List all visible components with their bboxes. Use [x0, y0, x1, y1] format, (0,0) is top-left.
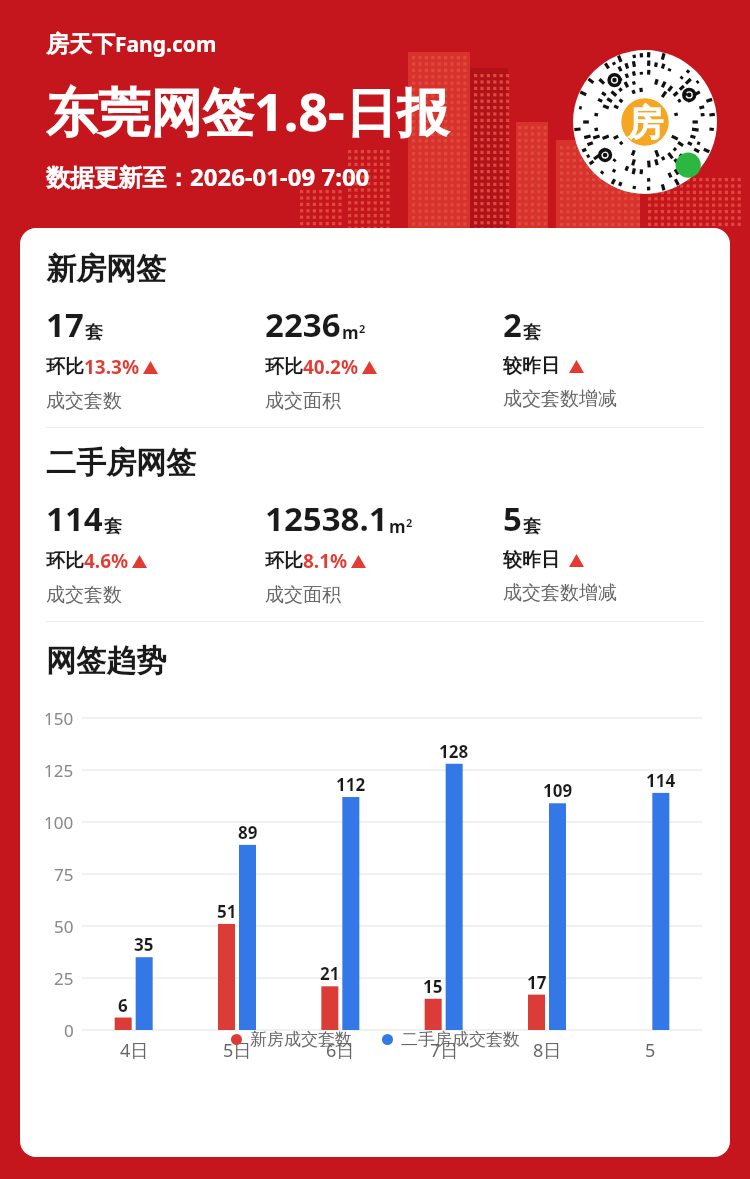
staticText: 7日	[430, 1038, 459, 1063]
button[interactable]: 5	[503, 496, 730, 605]
staticText: 成交套数	[46, 583, 122, 607]
button[interactable]: 114	[46, 496, 265, 607]
staticText: 75	[54, 863, 74, 886]
button[interactable]: 新房成交套数	[231, 1029, 352, 1050]
staticText: 4日	[120, 1038, 149, 1063]
staticText: 成交套数增减	[503, 581, 617, 605]
staticText: 6	[118, 994, 128, 1017]
staticText: 100	[44, 811, 74, 834]
staticText: 5日	[223, 1038, 252, 1063]
button[interactable]: 2	[503, 302, 730, 411]
staticText: 6日	[326, 1038, 355, 1063]
staticText: 环比	[46, 549, 84, 573]
staticText: 109	[543, 779, 573, 802]
staticText: 50	[54, 915, 74, 938]
staticText: m	[342, 321, 359, 344]
staticText: 4.6%	[84, 548, 129, 574]
button[interactable]: 12538.1	[265, 496, 503, 607]
staticText: Fang.com	[115, 30, 217, 59]
button[interactable]: 17	[46, 302, 265, 413]
staticText: 35	[134, 933, 154, 956]
staticText: m	[389, 515, 406, 538]
staticText: 2	[406, 515, 413, 530]
staticText: 17	[46, 302, 84, 347]
staticText: 新房成交套数	[250, 1029, 352, 1050]
staticText: 东莞网签1.8-日报	[46, 75, 449, 146]
button[interactable]: QR code	[573, 50, 717, 194]
staticText: 较昨日	[503, 354, 560, 378]
staticText: 21	[320, 962, 340, 985]
staticText: 15	[423, 975, 443, 998]
staticText: 网签趋势	[46, 642, 166, 680]
staticText: 套	[523, 515, 541, 538]
staticText: 17	[527, 971, 547, 994]
staticText: 成交面积	[265, 389, 341, 413]
staticText: 套	[523, 321, 541, 344]
staticText: 套	[85, 321, 103, 344]
staticText: 成交套数增减	[503, 387, 617, 411]
staticText: 套	[104, 515, 122, 538]
staticText: 成交套数	[46, 389, 122, 413]
staticText: 13.3%	[84, 354, 140, 380]
staticText: 5	[503, 496, 522, 541]
staticText: 二手房成交套数	[401, 1029, 520, 1050]
staticText: 环比	[265, 549, 303, 573]
staticText: 51	[217, 900, 237, 923]
staticText: 8日	[533, 1038, 562, 1063]
staticText: 2	[359, 321, 366, 336]
staticText: 2	[503, 302, 522, 347]
staticText: 40.2%	[303, 354, 359, 380]
staticText: 房天下	[46, 30, 115, 59]
staticText: 2236	[265, 302, 341, 347]
staticText: 114	[646, 769, 676, 792]
staticText: 环比	[46, 355, 84, 379]
staticText: 成交面积	[265, 583, 341, 607]
staticText: 8.1%	[303, 548, 348, 574]
button[interactable]: 二手房成交套数	[382, 1029, 520, 1050]
staticText: 128	[439, 740, 469, 763]
staticText: 5	[645, 1038, 656, 1063]
staticText: 房	[627, 100, 663, 145]
staticText: 114	[46, 496, 103, 541]
button[interactable]: 2236	[265, 302, 503, 413]
staticText: 12538.1	[265, 496, 388, 541]
staticText: 数据更新至：2026-01-09 7:00	[46, 160, 370, 193]
staticText: 较昨日	[503, 548, 560, 572]
staticText: 环比	[265, 355, 303, 379]
staticText: 150	[44, 707, 74, 730]
staticText: 0	[64, 1019, 74, 1042]
staticText: 125	[44, 759, 74, 782]
staticText: 89	[238, 821, 258, 844]
staticText: 112	[336, 773, 366, 796]
staticText: 新房网签	[46, 250, 166, 288]
staticText: 二手房网签	[46, 444, 196, 482]
staticText: 25	[54, 967, 74, 990]
